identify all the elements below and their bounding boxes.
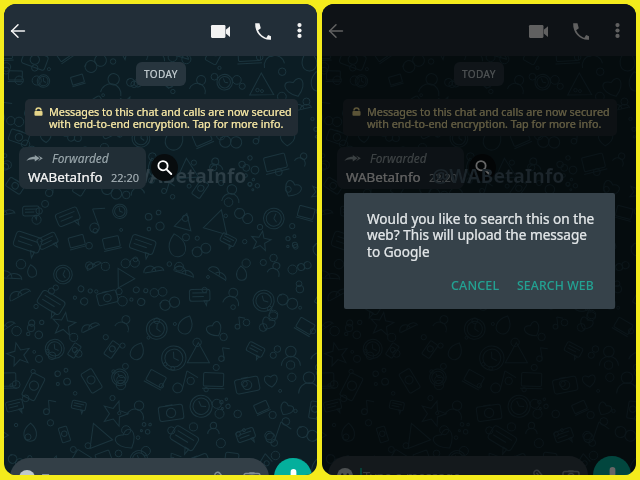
staticText: Messages to this chat and calls are now … <box>49 104 292 131</box>
staticText: Would you like to search this on the web… <box>367 209 603 261</box>
button[interactable]: Voice call <box>563 14 597 48</box>
button[interactable]: Type a message <box>10 458 269 475</box>
staticText: Forwarded <box>370 150 427 166</box>
button[interactable]: Back <box>4 15 34 47</box>
staticText: CANCEL <box>451 277 500 294</box>
staticText: WABetaInfo <box>28 168 103 186</box>
button[interactable]: Record voice message <box>593 456 631 475</box>
staticText: Type a message <box>363 467 461 475</box>
button[interactable]: Search the web <box>151 154 178 181</box>
staticText: TODAY <box>462 67 496 81</box>
staticText: @WABetaInfo <box>432 162 565 188</box>
button[interactable]: Back <box>322 15 352 47</box>
staticText: 22:20 <box>111 170 140 185</box>
staticText: SEARCH WEB <box>517 277 594 294</box>
staticText: Forwarded <box>52 150 109 166</box>
staticText: TODAY <box>144 67 178 81</box>
button[interactable]: Type a message <box>328 456 588 475</box>
staticText: WABetaInfo <box>346 168 421 186</box>
button[interactable]: Record voice message <box>274 458 312 475</box>
button[interactable]: SEARCH WEB <box>509 273 602 298</box>
button[interactable]: CANCEL <box>443 273 508 298</box>
button[interactable]: Video call <box>202 13 238 49</box>
button[interactable]: Video call <box>520 13 556 49</box>
button[interactable]: More options <box>283 14 315 46</box>
staticText: 22:20 <box>429 170 458 185</box>
button[interactable]: Voice call <box>245 14 279 48</box>
staticText: @WABetaInfo <box>114 162 247 188</box>
staticText: Messages to this chat and calls are now … <box>367 104 611 131</box>
button[interactable]: More options <box>601 14 633 46</box>
staticText: Type a message <box>42 469 140 475</box>
button[interactable]: Search the web <box>469 154 496 181</box>
